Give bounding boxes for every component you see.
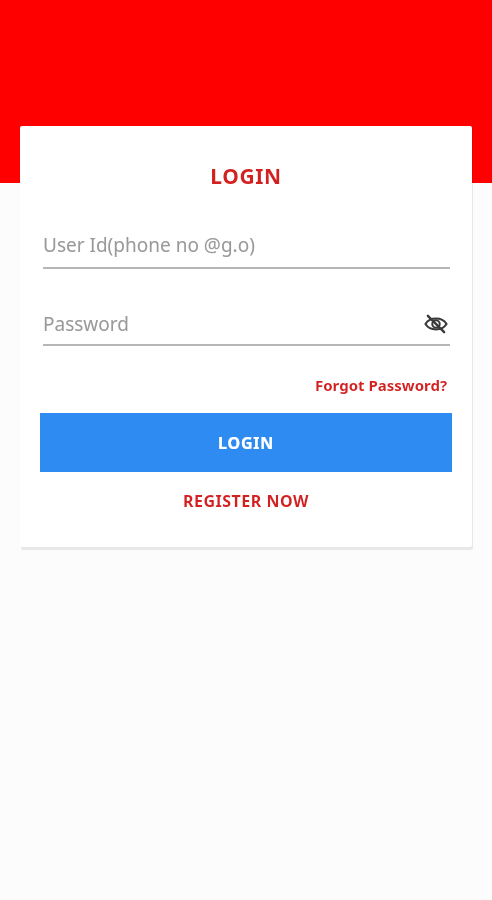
button[interactable]: User Id(phone no @g.o): [43, 232, 450, 269]
button[interactable]: LOGIN: [40, 413, 452, 472]
staticText: User Id(phone no @g.o): [43, 232, 255, 258]
button[interactable]: Password: [43, 310, 450, 338]
button[interactable]: Toggle password visibility: [422, 310, 450, 338]
staticText: Password: [43, 311, 422, 337]
staticText: LOGIN: [218, 432, 275, 454]
button[interactable]: Forgot Password?: [313, 373, 450, 397]
button[interactable]: REGISTER NOW: [179, 486, 313, 516]
staticText: LOGIN: [20, 162, 472, 191]
